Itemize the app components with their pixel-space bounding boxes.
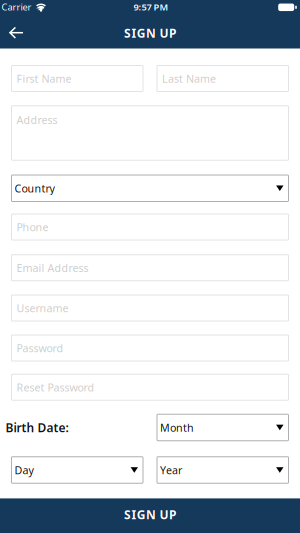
staticText: Reset Password [16,380,94,394]
staticText: Birth Date: [5,419,68,435]
staticText: Country [14,181,54,195]
button[interactable]: Year [156,456,289,484]
staticText: 9:57 PM [133,1,168,13]
staticText: Address [16,113,57,127]
button[interactable]: Address [11,105,289,161]
staticText: Username [16,301,68,315]
staticText: Day [14,463,33,477]
button[interactable]: SIGN UP [0,498,300,533]
button[interactable]: Country [11,174,289,202]
button[interactable]: Last Name [156,65,289,92]
button[interactable]: Day [11,456,143,484]
staticText: Month [160,420,194,435]
button[interactable]: First Name [11,65,143,92]
button[interactable]: Email Address [11,254,289,281]
staticText: Email Address [16,261,88,275]
staticText: Year [160,463,182,477]
staticText: First Name [16,71,71,86]
button[interactable]: Month [156,414,289,441]
staticText: SIGN UP [124,25,176,41]
button[interactable]: Back [2,19,30,47]
button[interactable]: Reset Password [11,374,289,401]
staticText: SIGN UP [124,507,176,523]
staticText: Carrier [1,1,31,13]
staticText: Password [16,341,63,355]
staticText: Last Name [162,71,216,86]
button[interactable]: Phone [11,213,289,240]
button[interactable]: Username [11,294,289,321]
staticText: Phone [16,220,48,234]
button[interactable]: Password [11,334,289,361]
